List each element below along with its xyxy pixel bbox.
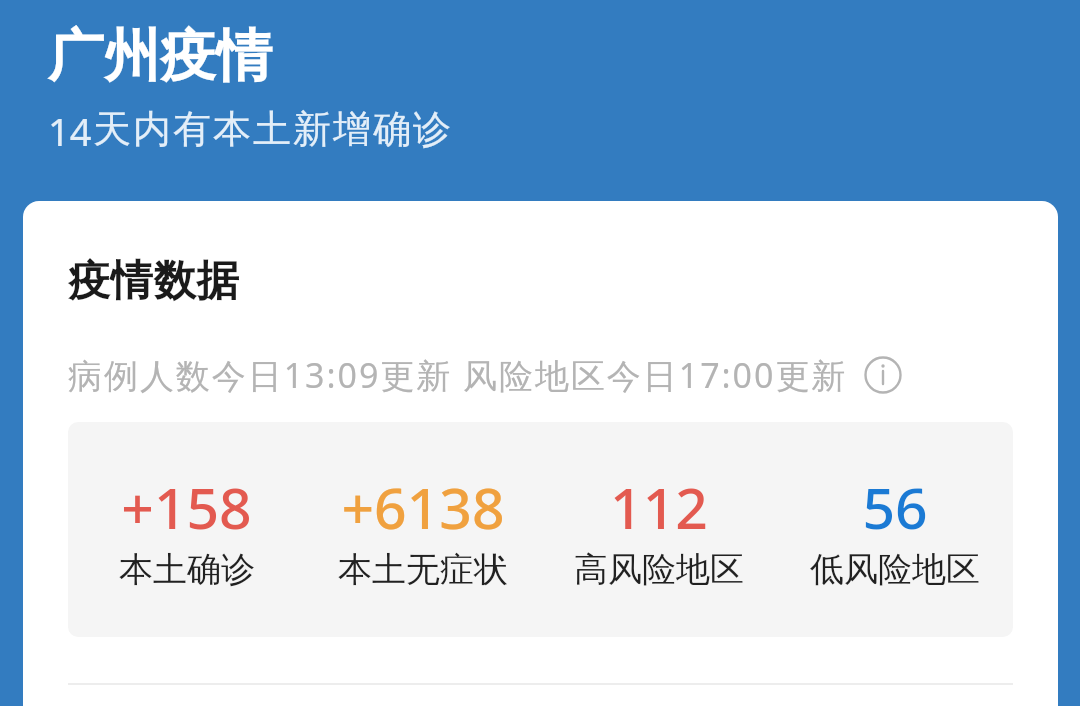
button[interactable]: 56 <box>777 468 1013 591</box>
staticText: +6138 <box>341 468 505 546</box>
staticText: 低风险地区 <box>810 548 980 591</box>
staticText: 112 <box>610 468 708 546</box>
button[interactable]: +6138 <box>305 468 541 591</box>
staticText: 病例人数今日13:09更新 风险地区今日17:00更新 <box>68 352 848 398</box>
button[interactable]: 数据说明 Info <box>863 355 903 395</box>
staticText: 56 <box>862 468 928 546</box>
staticText: 高风险地区 <box>574 548 744 591</box>
button[interactable]: +158 <box>68 468 305 591</box>
staticText: 14 <box>48 105 92 157</box>
staticText: 天内有本土新增确诊 <box>92 105 452 153</box>
staticText: 疫情数据 <box>68 255 240 308</box>
staticText: 本土确诊 <box>119 548 255 591</box>
staticText: 广州疫情 <box>48 21 272 92</box>
staticText: +158 <box>121 468 252 546</box>
staticText: 本土无症状 <box>338 548 508 591</box>
button[interactable]: 112 <box>541 468 777 591</box>
